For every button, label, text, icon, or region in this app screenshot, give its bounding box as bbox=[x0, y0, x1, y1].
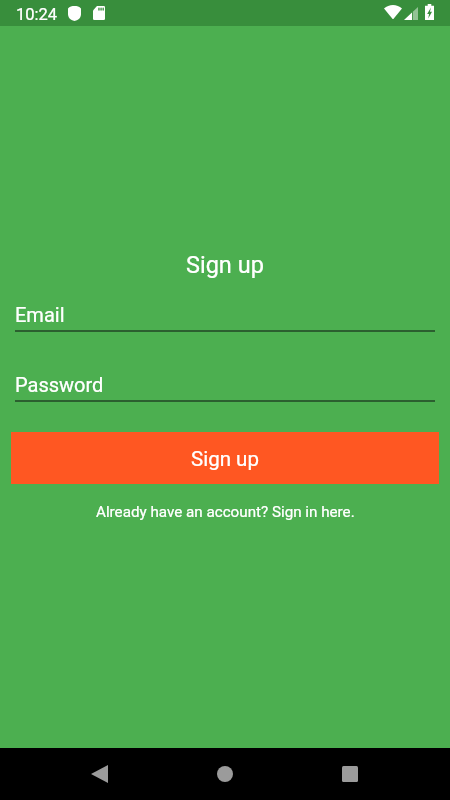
staticText: Sign up bbox=[191, 447, 259, 471]
button[interactable]: Already have an account? Sign in here. bbox=[96, 503, 355, 521]
staticText: Email bbox=[15, 303, 65, 326]
staticText: Sign up bbox=[186, 251, 264, 279]
button[interactable]: Sign up bbox=[11, 432, 439, 484]
staticText: Already have an account? Sign in here. bbox=[96, 503, 355, 521]
button[interactable]: Home bbox=[201, 750, 249, 798]
button[interactable]: Back bbox=[75, 750, 123, 798]
button[interactable]: Recent apps bbox=[326, 750, 374, 798]
staticText: 10:24 bbox=[16, 5, 58, 24]
button[interactable]: Email bbox=[15, 303, 435, 332]
staticText: Password bbox=[15, 373, 104, 396]
button[interactable]: Password bbox=[15, 373, 435, 402]
